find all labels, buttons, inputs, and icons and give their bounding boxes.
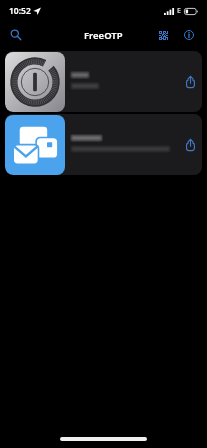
staticText: E bbox=[177, 6, 181, 16]
button[interactable]: Scan QR code bbox=[151, 23, 175, 47]
button[interactable]: Share bbox=[5, 114, 202, 175]
button[interactable]: Share bbox=[178, 68, 202, 96]
button[interactable]: About bbox=[177, 23, 201, 47]
button[interactable]: Share bbox=[178, 131, 202, 159]
button[interactable]: Share bbox=[5, 51, 202, 112]
staticText: FreeOTP bbox=[84, 29, 123, 42]
button[interactable]: Search bbox=[4, 23, 28, 47]
staticText: 10:52 bbox=[9, 5, 31, 17]
